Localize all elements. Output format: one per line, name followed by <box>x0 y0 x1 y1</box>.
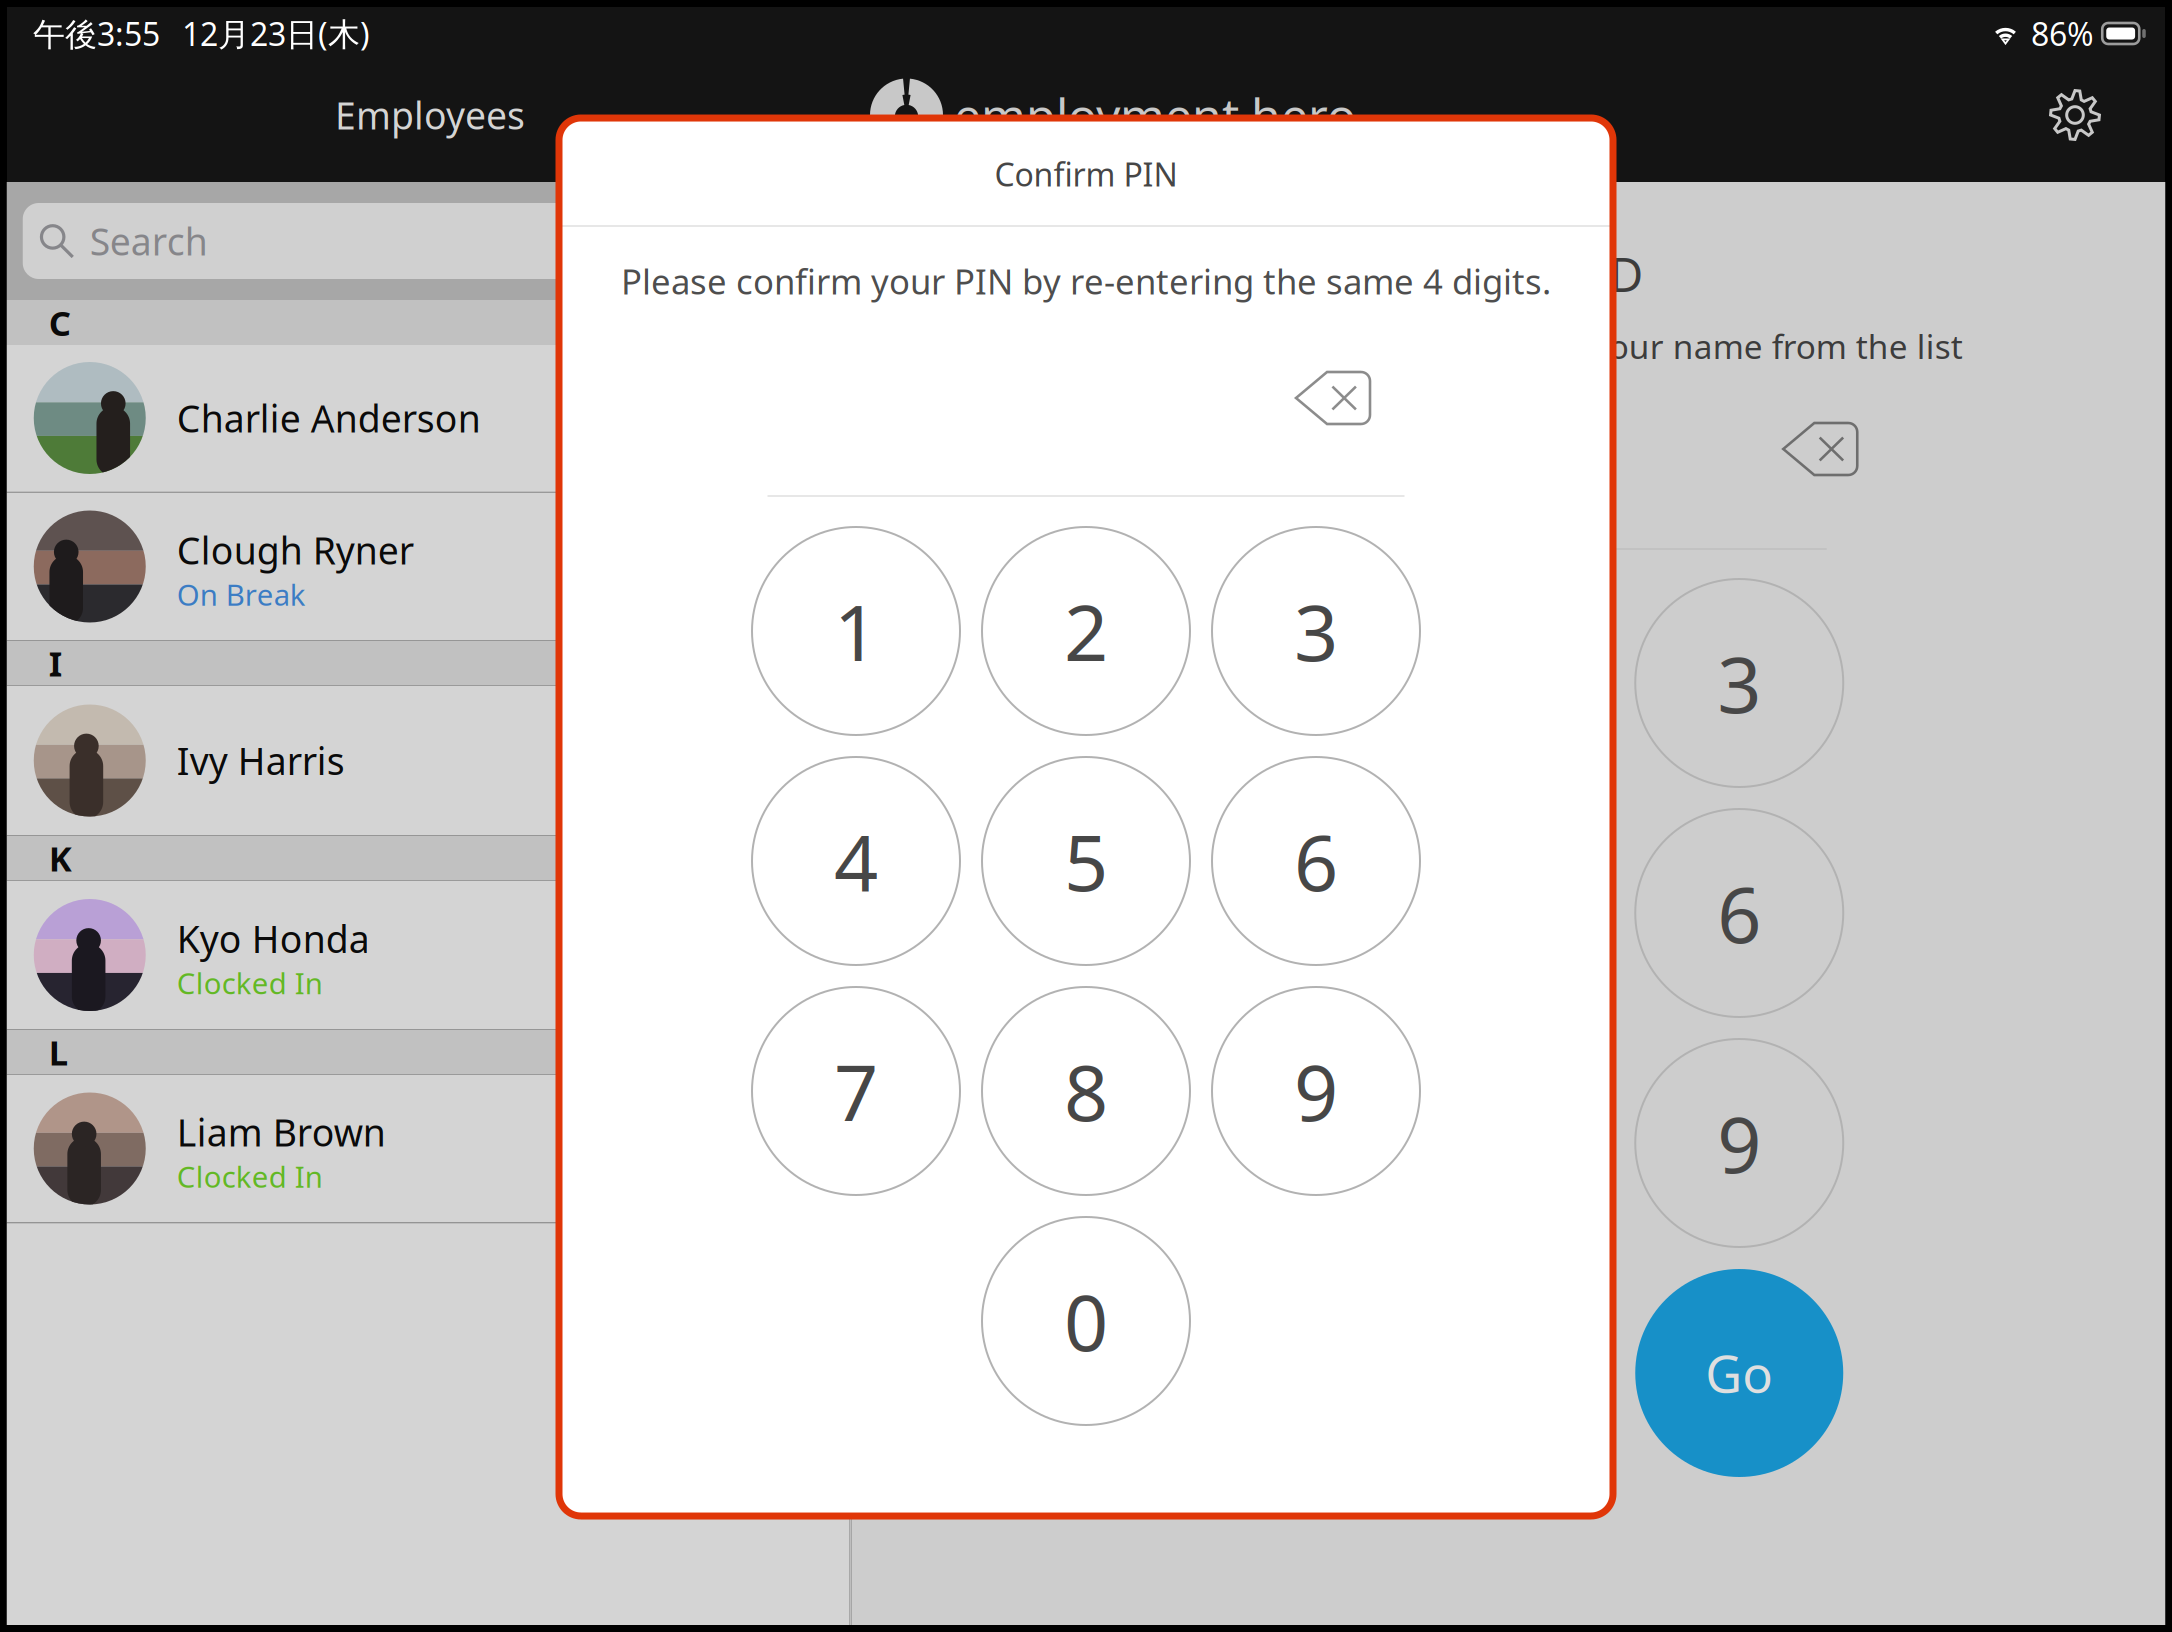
button[interactable]: Charlie Anderson <box>7 345 850 491</box>
staticText: Ivy Harris <box>177 736 345 785</box>
staticText: Search <box>90 216 208 266</box>
staticText: Employees <box>335 90 525 140</box>
staticText: 7 <box>834 1040 878 1142</box>
staticText: 9 <box>1294 1040 1338 1142</box>
button[interactable]: Ivy Harris <box>7 685 850 835</box>
staticText: Liam Brown <box>177 1107 386 1157</box>
staticText: Clocked In <box>177 1157 323 1196</box>
staticText: 3 <box>1294 580 1338 682</box>
staticText: 2 <box>1064 580 1108 682</box>
staticText: Clough Ryner <box>177 525 414 575</box>
staticText: Go <box>1705 1339 1773 1407</box>
staticText: 4 <box>1257 862 1301 964</box>
staticText: 12月23日(木) <box>182 12 370 55</box>
button[interactable]: 1 <box>752 527 960 735</box>
button[interactable]: 7 <box>1175 1039 1383 1247</box>
staticText: On Break <box>177 575 306 614</box>
button[interactable]: 6 <box>1635 809 1843 1017</box>
button[interactable]: Kyo Honda <box>7 880 850 1029</box>
button[interactable]: 6 <box>1212 757 1420 965</box>
staticText: 5 <box>1064 810 1108 912</box>
button[interactable]: 1 <box>1175 579 1383 787</box>
button[interactable]: 5 <box>982 757 1190 965</box>
button[interactable]: Settings <box>2031 71 2119 159</box>
staticText: Charlie Anderson <box>177 393 481 443</box>
button[interactable]: 2 <box>982 527 1190 735</box>
staticText: 86% <box>2031 12 2094 55</box>
button[interactable]: 9 <box>1635 1039 1843 1247</box>
button[interactable]: 8 <box>982 987 1190 1195</box>
staticText: Please enter your PIN ID or select your … <box>1054 324 1963 368</box>
button[interactable]: Delete <box>1783 423 1857 475</box>
button[interactable]: 7 <box>752 987 960 1195</box>
button[interactable]: 0 <box>982 1217 1190 1425</box>
button[interactable]: 8 <box>1405 1039 1613 1247</box>
staticText: 1 <box>1257 632 1301 734</box>
button[interactable]: 0 <box>1405 1269 1613 1477</box>
staticText: 9 <box>1717 1092 1761 1194</box>
staticText: 6 <box>1294 810 1338 912</box>
staticText: 1 <box>834 580 878 682</box>
button[interactable]: 4 <box>1175 809 1383 1017</box>
button[interactable]: Liam Brown <box>7 1074 850 1222</box>
staticText: 8 <box>1064 1040 1108 1142</box>
staticText: K <box>49 835 72 881</box>
staticText: Please confirm your PIN by re-entering t… <box>621 258 1551 304</box>
staticText: Confirm PIN <box>994 153 1177 195</box>
staticText: Kyo Honda <box>177 914 370 963</box>
button[interactable]: Delete <box>1296 372 1370 424</box>
staticText: 午後3:55 <box>33 12 160 55</box>
staticText: Enter PIN ID <box>1373 243 1643 305</box>
staticText: 3 <box>1717 632 1761 734</box>
button[interactable]: Go <box>1635 1269 1843 1477</box>
staticText: 0 <box>1064 1270 1108 1372</box>
staticText: Clocked In <box>177 963 323 1002</box>
button[interactable]: 3 <box>1212 527 1420 735</box>
button[interactable]: Search <box>23 203 819 279</box>
button[interactable]: 3 <box>1635 579 1843 787</box>
staticText: 4 <box>834 810 878 912</box>
staticText: L <box>49 1029 68 1075</box>
button[interactable]: 9 <box>1212 987 1420 1195</box>
staticText: I <box>49 640 62 686</box>
staticText: C <box>49 299 71 345</box>
button[interactable]: 4 <box>752 757 960 965</box>
button[interactable]: 2 <box>1405 579 1613 787</box>
staticText: 6 <box>1717 862 1761 964</box>
button[interactable]: Clough Ryner <box>7 492 850 640</box>
button[interactable]: 5 <box>1405 809 1613 1017</box>
staticText: 7 <box>1257 1092 1301 1194</box>
staticText: employment hero <box>954 83 1356 147</box>
